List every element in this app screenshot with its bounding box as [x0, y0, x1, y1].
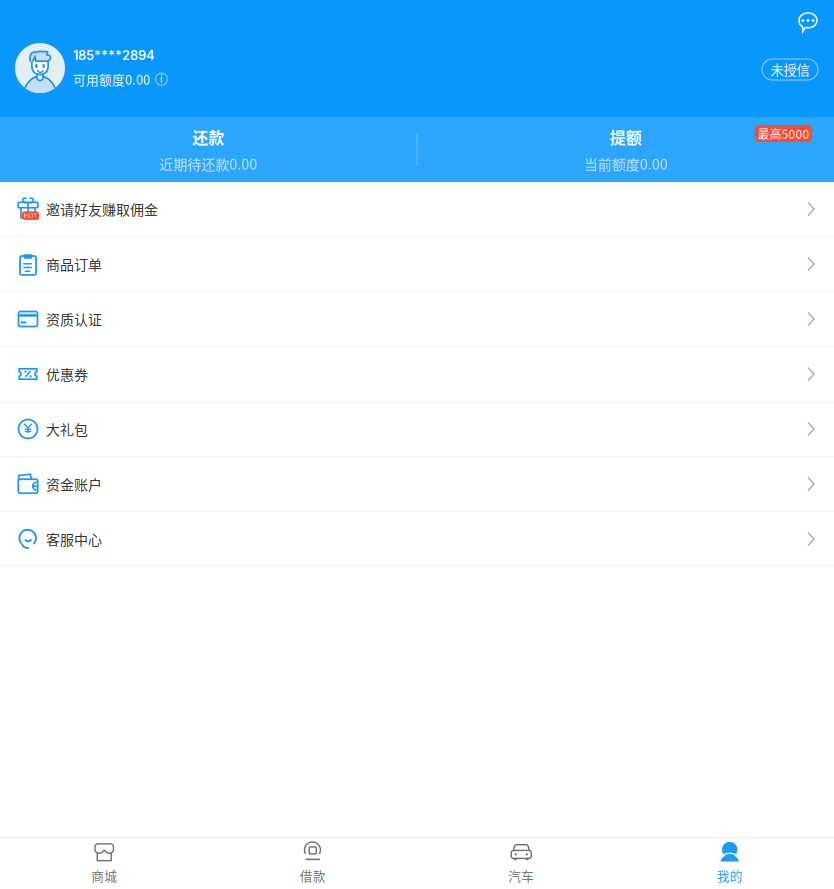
button[interactable]: 我的 [625, 838, 834, 889]
button[interactable]: HOT [0, 182, 834, 237]
staticText: 最高5000 [757, 125, 809, 142]
staticText: 可用额度0.00 [73, 70, 150, 88]
button[interactable]: 优惠券 [0, 347, 834, 402]
button[interactable]: 提额 [417, 117, 834, 182]
staticText: i [160, 72, 163, 85]
button[interactable]: 未授信 [762, 59, 818, 80]
staticText: 当前额度0.00 [584, 153, 668, 174]
staticText: 客服中心 [46, 529, 102, 549]
button[interactable]: 借款 [208, 838, 417, 889]
staticText: 借款 [300, 866, 326, 885]
staticText: 未授信 [770, 60, 809, 79]
staticText: 邀请好友赚取佣金 [46, 199, 158, 219]
button[interactable]: 大礼包 [0, 402, 834, 457]
button[interactable]: 资金账户 [0, 457, 834, 512]
staticText: 资质认证 [46, 309, 102, 329]
staticText: 我的 [717, 866, 743, 885]
staticText: 还款 [192, 125, 224, 148]
staticText: 资金账户 [46, 474, 102, 494]
staticText: 185****2894 [73, 48, 155, 63]
staticText: 大礼包 [46, 419, 88, 439]
button[interactable]: 汽车 [417, 838, 625, 889]
staticText: 商城 [91, 866, 117, 885]
staticText: 提额 [610, 125, 642, 148]
button[interactable]: 资质认证 [0, 292, 834, 347]
button[interactable]: 客服中心 [0, 512, 834, 567]
button[interactable]: 还款 [0, 117, 416, 182]
staticText: 优惠券 [46, 364, 88, 384]
button[interactable]: 消息 [798, 12, 818, 33]
staticText: 商品订单 [46, 254, 102, 274]
button[interactable]: 商品订单 [0, 237, 834, 292]
button[interactable]: 商城 [0, 838, 208, 889]
staticText: 汽车 [508, 866, 534, 885]
staticText: HOT [23, 212, 37, 220]
staticText: 近期待还款0.00 [159, 153, 257, 174]
